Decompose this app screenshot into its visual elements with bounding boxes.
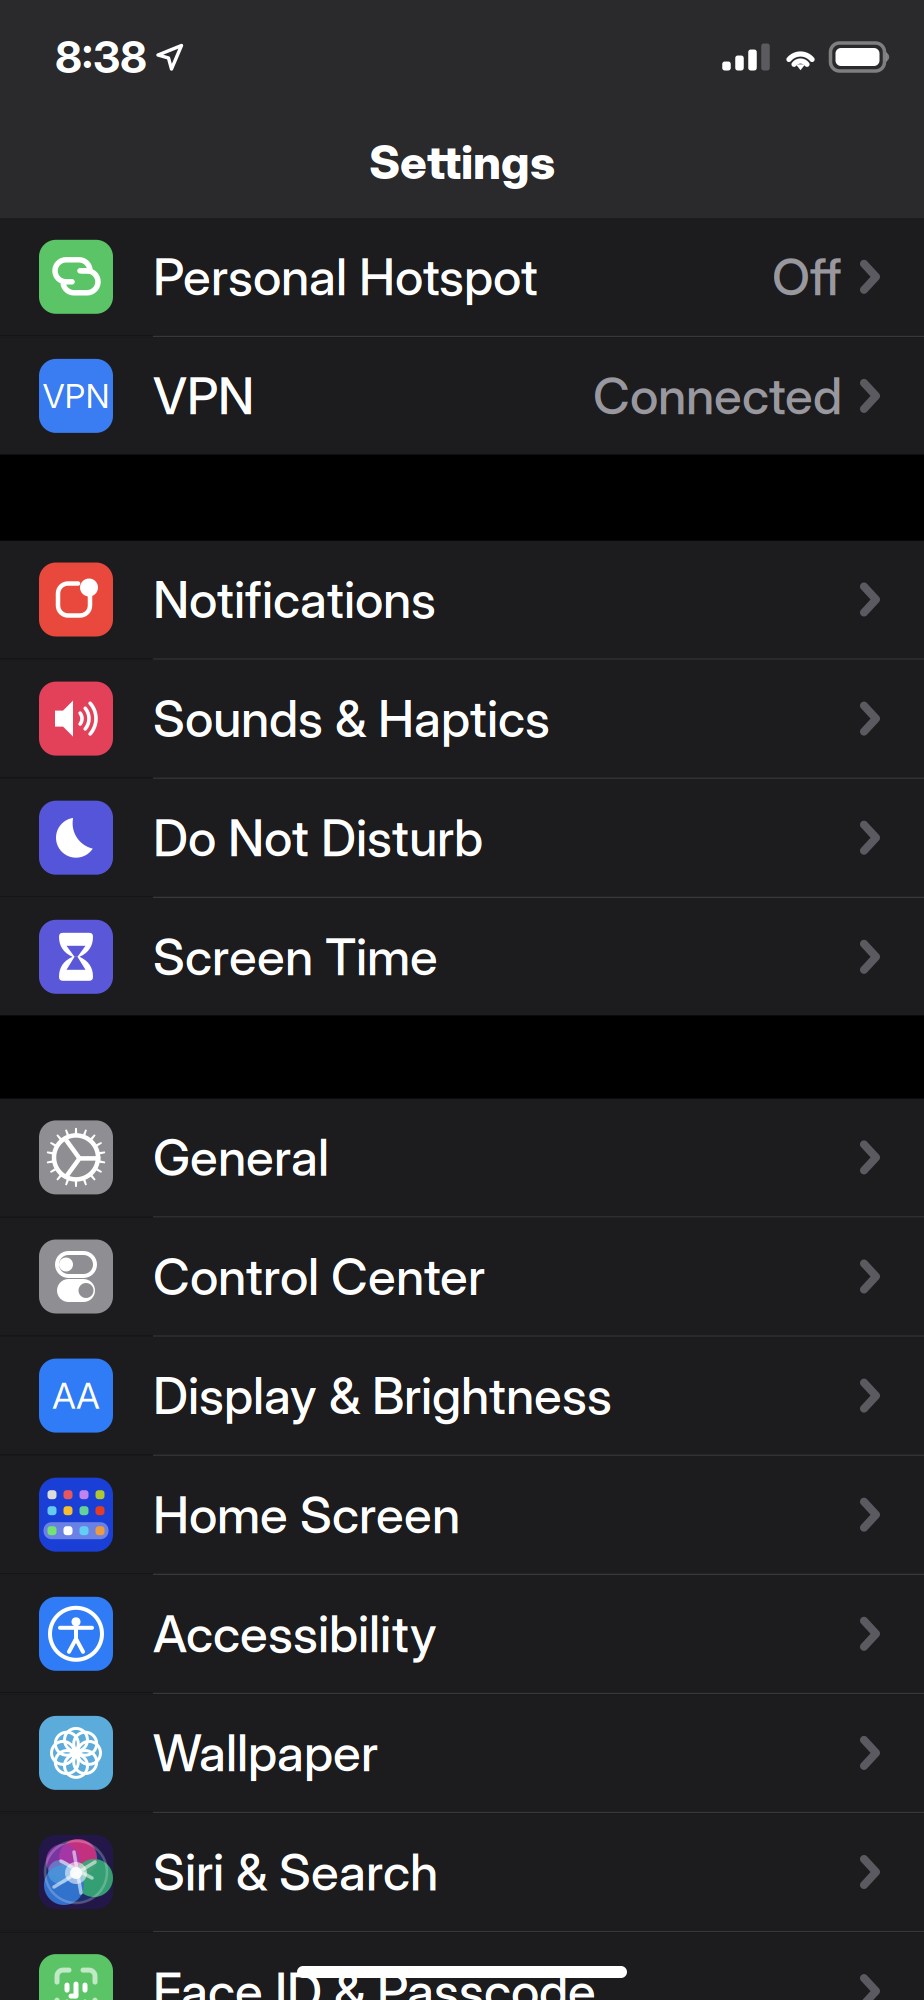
staticText: VPN — [42, 376, 109, 416]
staticText: VPN — [153, 365, 254, 426]
button[interactable]: Do Not Disturb — [0, 779, 924, 896]
staticText: Do Not Disturb — [153, 807, 483, 868]
staticText: Screen Time — [153, 926, 438, 987]
staticText: Personal Hotspot — [153, 246, 538, 307]
staticText: Off — [772, 246, 842, 307]
staticText: Display & Brightness — [153, 1365, 612, 1426]
staticText: Accessibility — [153, 1603, 437, 1664]
button[interactable]: Accessibility — [0, 1575, 924, 1693]
button[interactable]: General — [0, 1099, 924, 1216]
button[interactable]: Siri & Search — [0, 1813, 924, 1931]
staticText: Siri & Search — [153, 1841, 438, 1903]
staticText: Home Screen — [153, 1484, 460, 1545]
staticText: 8:38 — [55, 30, 147, 84]
staticText: Sounds & Haptics — [153, 688, 550, 749]
staticText: General — [153, 1127, 329, 1188]
button[interactable]: Home Screen — [0, 1456, 924, 1573]
button[interactable]: Screen Time — [0, 898, 924, 1016]
button[interactable]: Face ID & Passcode — [0, 1932, 924, 2000]
button[interactable]: Sounds & Haptics — [0, 660, 924, 777]
button[interactable]: Control Center — [0, 1218, 924, 1335]
button[interactable]: Personal Hotspot — [0, 218, 924, 336]
button[interactable]: Wallpaper — [0, 1694, 924, 1812]
staticText: Settings — [369, 134, 555, 190]
staticText: Notifications — [153, 569, 436, 630]
button[interactable]: AA — [0, 1337, 924, 1454]
staticText: Face ID & Passcode — [153, 1960, 596, 2000]
staticText: Control Center — [153, 1246, 485, 1307]
staticText: Wallpaper — [153, 1722, 378, 1783]
staticText: AA — [52, 1374, 100, 1417]
button[interactable]: Notifications — [0, 541, 924, 658]
button[interactable]: VPN — [0, 337, 924, 455]
staticText: Connected — [593, 365, 842, 426]
